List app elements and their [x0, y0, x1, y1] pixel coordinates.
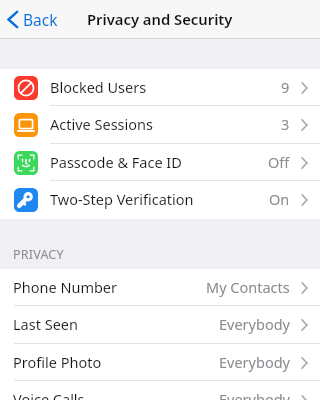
staticText: Blocked Users — [50, 77, 147, 97]
staticText: Active Sessions — [50, 114, 153, 134]
staticText: Off — [268, 152, 290, 172]
button[interactable]: Back — [0, 5, 64, 34]
staticText: Back — [23, 9, 58, 30]
staticText: Last Seen — [13, 314, 78, 334]
button[interactable]: Phone Number — [0, 269, 320, 306]
staticText: 3 — [281, 114, 290, 134]
staticText: Phone Number — [13, 277, 118, 297]
button[interactable]: Voice Calls — [0, 381, 320, 400]
staticText: PRIVACY — [13, 246, 64, 263]
button[interactable]: Last Seen — [0, 306, 320, 344]
staticText: Passcode & Face ID — [50, 152, 182, 172]
staticText: Everybody — [219, 352, 290, 372]
staticText: On — [269, 189, 290, 209]
button[interactable]: Active Sessions — [0, 106, 320, 144]
staticText: Profile Photo — [13, 352, 102, 372]
staticText: Everybody — [219, 314, 290, 334]
button[interactable]: Passcode & Face ID — [0, 144, 320, 181]
staticText: Two-Step Verification — [50, 189, 194, 209]
staticText: Privacy and Security — [87, 9, 233, 29]
staticText: Everybody — [219, 389, 290, 400]
button[interactable]: Two-Step Verification — [0, 181, 320, 219]
staticText: Voice Calls — [13, 389, 85, 400]
staticText: 9 — [281, 77, 290, 97]
button[interactable]: Profile Photo — [0, 344, 320, 381]
staticText: My Contacts — [206, 277, 290, 297]
button[interactable]: Blocked Users — [0, 69, 320, 106]
